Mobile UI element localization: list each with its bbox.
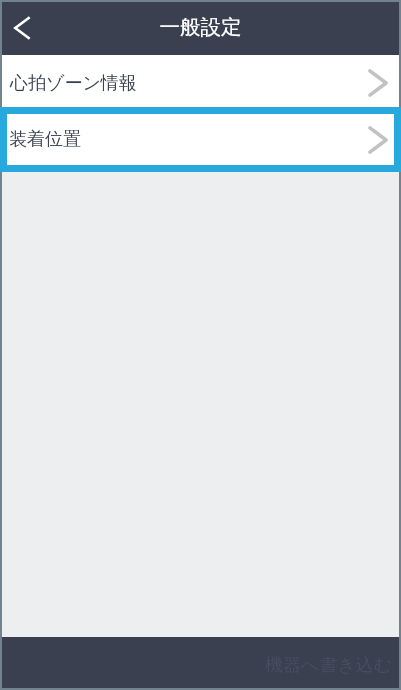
staticText: 装着位置 <box>9 128 81 151</box>
button[interactable]: 装着位置 <box>2 107 399 172</box>
button[interactable]: Back <box>2 8 42 48</box>
staticText: 心拍ゾーン情報 <box>10 72 137 95</box>
button[interactable]: 心拍ゾーン情報 <box>2 55 399 107</box>
staticText: 機器へ書き込む <box>265 654 393 677</box>
staticText: 一般設定 <box>2 14 399 40</box>
